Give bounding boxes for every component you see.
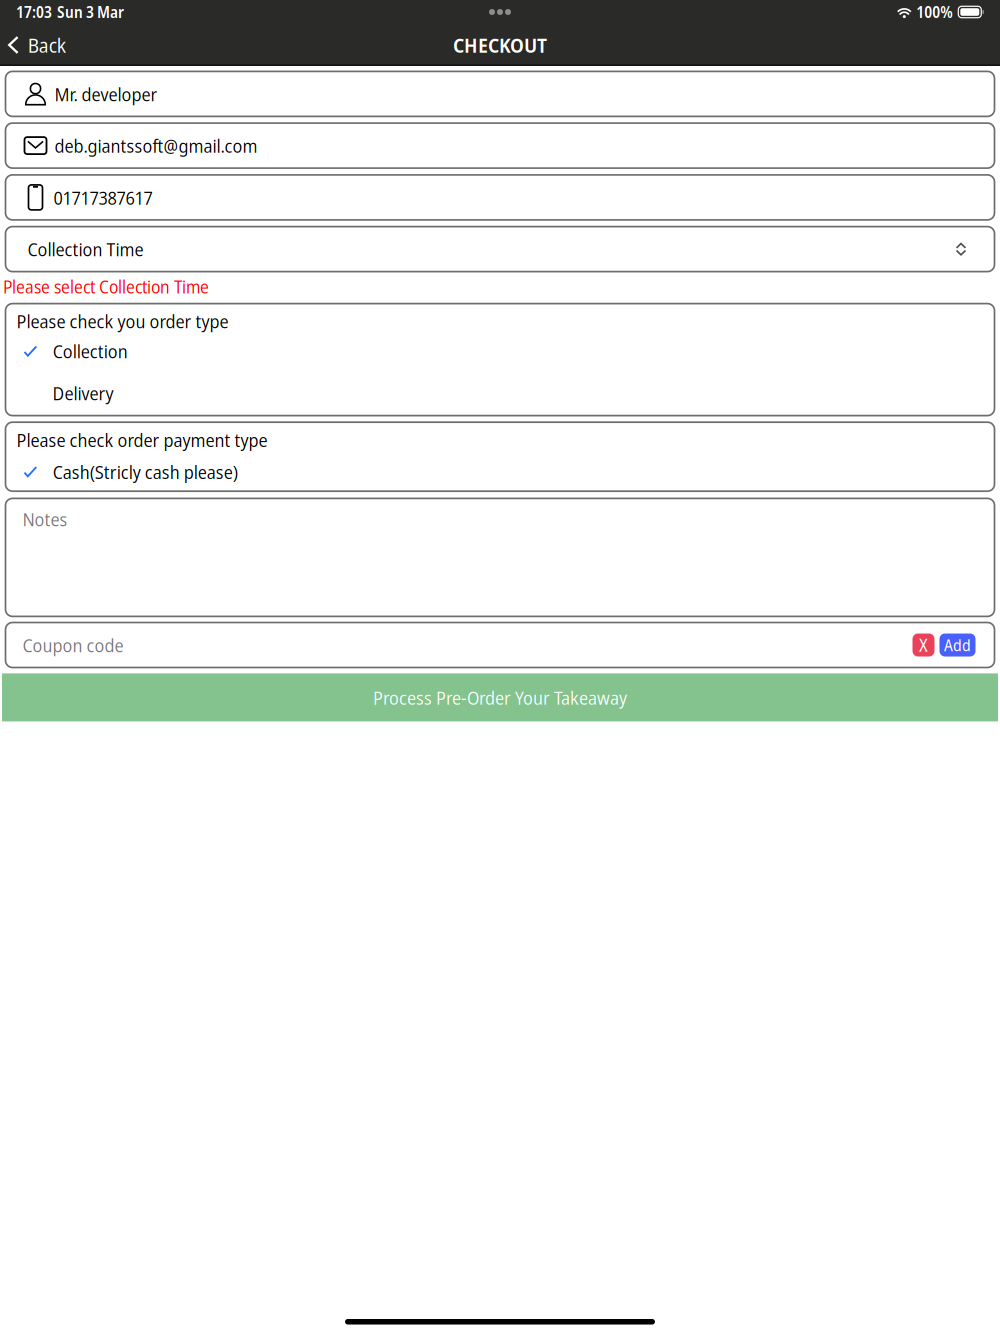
button[interactable]: Notes [5,498,994,616]
staticText: Collection Time [27,236,143,262]
staticText: Delivery [52,380,113,406]
button[interactable]: deb.giantssoft@gmail.com [5,123,994,168]
button[interactable]: Collection Time [5,227,994,272]
staticText: Cash(Stricly cash please) [53,459,238,484]
button[interactable]: Process Pre-Order Your Takeaway [2,673,998,721]
staticText: Please check you order type [16,308,228,334]
button[interactable]: Cash(Stricly cash please) [6,462,993,482]
staticText: Please select Collection Time [3,274,209,299]
staticText: Sun 3 Mar [57,2,124,22]
staticText: deb.giantssoft@gmail.com [54,133,257,158]
staticText: Coupon code [22,632,123,658]
staticText: 01717387617 [53,185,152,210]
button[interactable]: Back [0,24,78,66]
staticText: Add [944,634,971,656]
staticText: Back [28,31,66,59]
staticText: Please check order payment type [16,427,267,452]
button[interactable]: Delivery [6,383,993,403]
staticText: Collection [53,338,128,364]
button[interactable]: 01717387617 [5,175,994,220]
button[interactable]: Collection [6,341,993,361]
staticText: Process Pre-Order Your Takeaway [373,685,627,710]
button[interactable]: Clear coupon code [912,633,934,656]
staticText: CHECKOUT [453,31,547,59]
staticText: 100% [916,2,953,22]
button[interactable]: Mr. developer [5,71,994,116]
staticText: X [919,633,928,657]
staticText: 17:03 [16,2,52,22]
button[interactable]: Add [939,633,975,656]
staticText: Notes [22,506,67,532]
staticText: Mr. developer [54,81,157,107]
